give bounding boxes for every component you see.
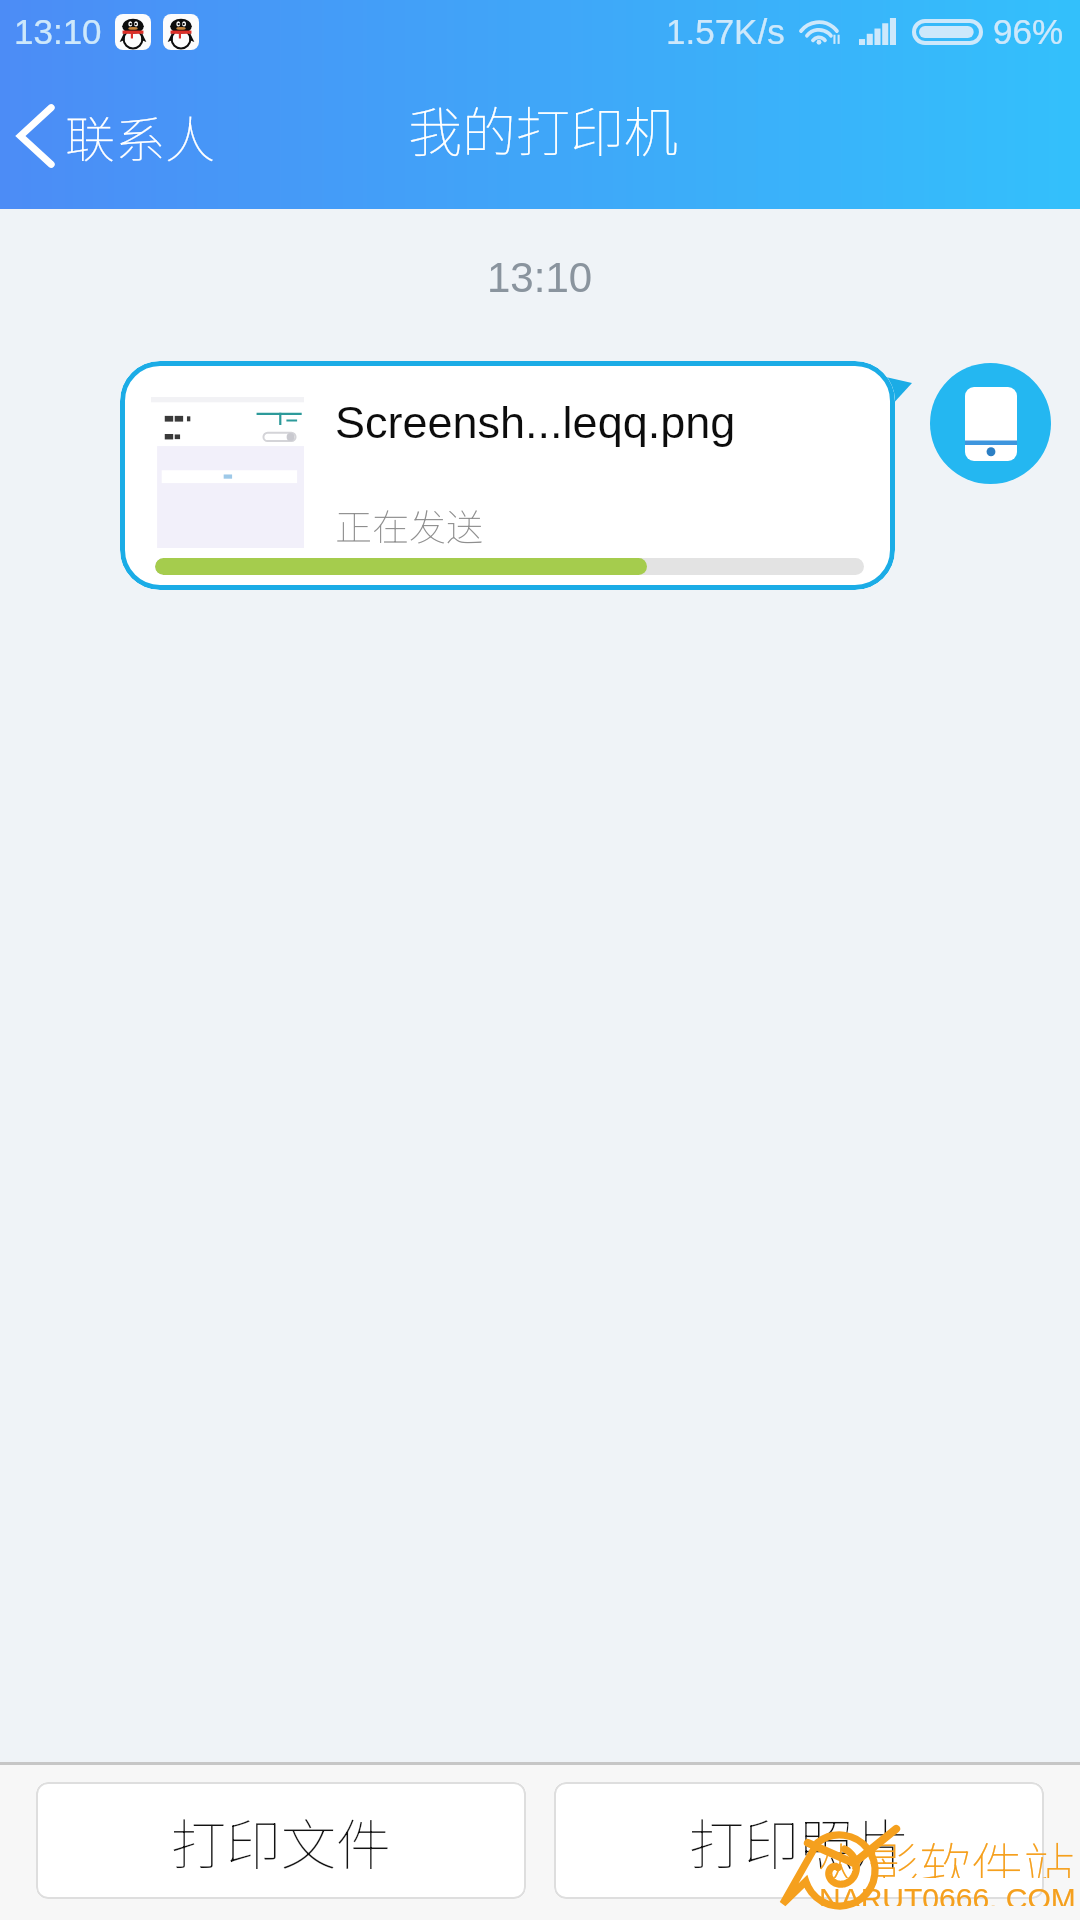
staticText: 96% [993, 12, 1064, 51]
staticText: 我的打印机 [408, 89, 678, 167]
staticText: 13:10 [487, 254, 593, 301]
button[interactable]: 打印照片 [554, 1782, 1044, 1899]
button[interactable]: 打印文件 [36, 1782, 526, 1899]
staticText: 打印照片 [689, 1801, 910, 1881]
staticText: Screensh...leqq.png [335, 397, 736, 447]
button[interactable]: 联系人 [0, 62, 237, 209]
staticText: 1.57K/s [666, 12, 785, 51]
button[interactable]: Screensh...leqq.png [120, 361, 895, 590]
staticText: NARUT0666. COM [819, 1882, 1076, 1906]
staticText: 正在发送 [335, 498, 483, 552]
staticText: 打印文件 [171, 1801, 392, 1881]
staticText: 火影软件站 [815, 1826, 1076, 1878]
staticText: 联系人 [65, 100, 215, 172]
staticText: 13:10 [14, 12, 102, 51]
button[interactable]: Printer avatar [930, 363, 1051, 484]
